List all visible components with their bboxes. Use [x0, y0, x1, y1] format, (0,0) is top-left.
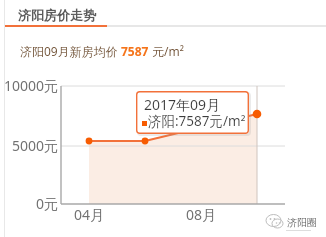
staticText: 08月 — [181, 205, 221, 224]
button[interactable]: 济阳房价走势 — [18, 7, 96, 23]
staticText: 济阳:7587元/m² — [148, 112, 246, 130]
button[interactable]: 济阳09月新房均价 — [20, 43, 185, 59]
button[interactable]: 济阳圈 — [264, 211, 316, 232]
staticText: 10000元 — [0, 76, 58, 95]
staticText: 2017年09月 — [144, 95, 221, 114]
staticText: 7587 — [121, 43, 149, 59]
staticText: 济阳房价走势 — [18, 7, 96, 23]
staticText: 济阳09月新房均价 — [20, 43, 121, 59]
staticText: 0元 — [0, 194, 58, 213]
staticText: 济阳圈 — [287, 216, 317, 229]
staticText: 04月 — [69, 205, 109, 224]
staticText: 5000元 — [0, 136, 58, 155]
staticText: 元/m² — [149, 43, 185, 59]
